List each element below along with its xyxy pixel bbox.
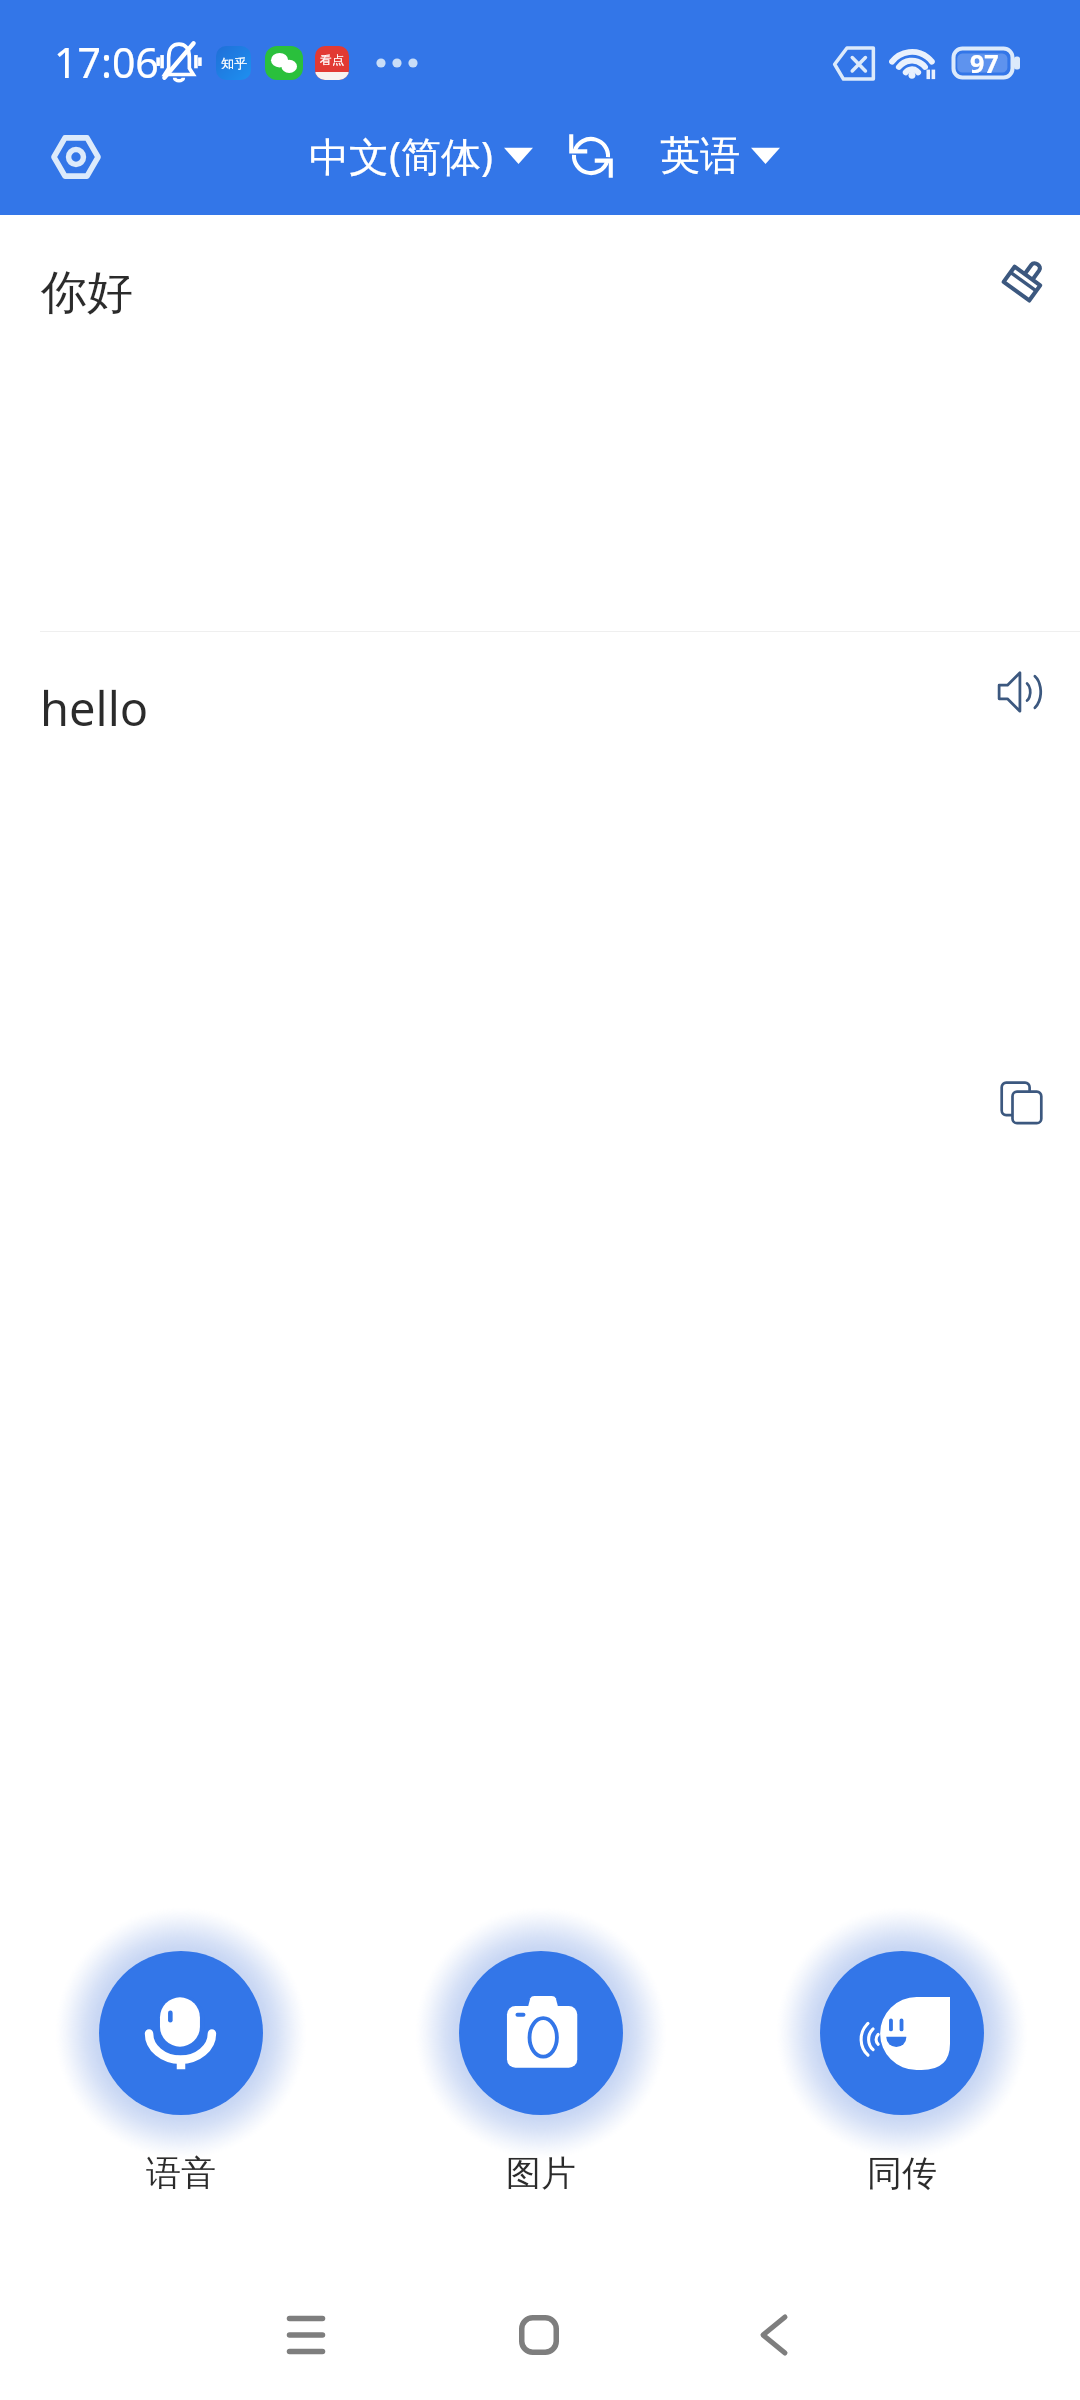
button[interactable]: Settings <box>40 121 112 193</box>
button[interactable]: Swap languages <box>557 122 625 190</box>
staticText: 中文(简体) <box>309 128 493 183</box>
button[interactable]: Recent apps <box>231 2270 381 2400</box>
button[interactable]: 英语 <box>651 119 789 191</box>
other: Voice translation <box>99 1951 263 2115</box>
button[interactable]: Play pronunciation <box>983 653 1061 731</box>
staticText: 你好 <box>41 264 133 322</box>
staticText: 同传 <box>867 2151 937 2195</box>
staticText: hello <box>40 676 149 740</box>
other: Image translation <box>459 1951 623 2115</box>
staticText: 图片 <box>506 2151 576 2195</box>
staticText: 英语 <box>660 130 740 180</box>
button[interactable]: Clear text <box>987 238 1065 316</box>
staticText: 看点 <box>320 52 344 67</box>
staticText: 语音 <box>146 2151 216 2195</box>
button[interactable]: Image translation <box>459 1951 623 2195</box>
button[interactable]: Voice translation <box>99 1951 263 2195</box>
button[interactable]: 你好 <box>0 215 1080 631</box>
button[interactable]: Simultaneous interpretation <box>820 1951 984 2195</box>
staticText: 97 <box>970 46 999 78</box>
staticText: 17:06 <box>54 34 159 90</box>
button[interactable]: 中文(简体) <box>300 119 542 191</box>
button[interactable]: hello <box>0 632 1080 1872</box>
button[interactable]: Back <box>698 2270 848 2400</box>
other: Simultaneous interpretation <box>820 1951 984 2115</box>
button[interactable]: Home <box>464 2270 614 2400</box>
button[interactable]: Copy translation <box>982 1063 1060 1141</box>
staticText: 知乎 <box>221 55 247 71</box>
